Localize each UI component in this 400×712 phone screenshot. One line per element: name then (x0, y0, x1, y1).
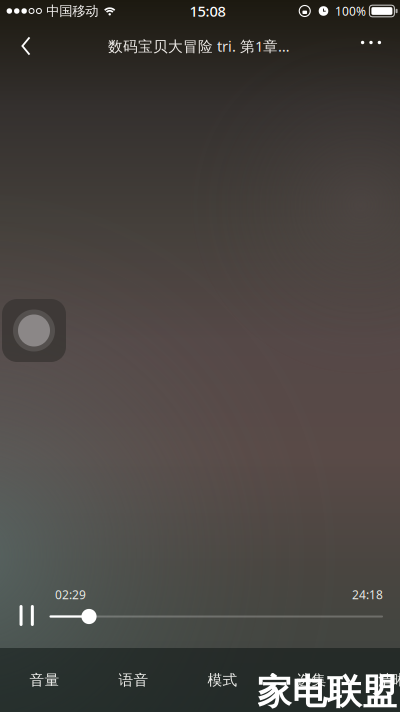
staticText: 中国移动 (46, 3, 98, 19)
button[interactable]: 音量 (0, 648, 89, 712)
button[interactable]: 模式 (178, 648, 267, 712)
staticText: 家电联盟 (257, 671, 397, 712)
staticText: 音量 (29, 671, 59, 689)
staticText: 02:29 (55, 586, 86, 602)
staticText: 15:08 (190, 1, 226, 21)
button[interactable]: 选集 (267, 648, 356, 712)
button[interactable]: Back (4, 24, 48, 68)
staticText: 语音 (118, 671, 148, 689)
staticText: 清晰度 (378, 671, 400, 689)
button[interactable]: Pause (7, 598, 47, 632)
staticText: 选集 (296, 671, 326, 689)
staticText: 24:18 (352, 586, 383, 602)
button[interactable]: 语音 (89, 648, 178, 712)
staticText: 模式 (207, 671, 237, 689)
staticText: 数码宝贝大冒险 tri. 第1章… (108, 36, 290, 56)
staticText: 100% (335, 3, 366, 19)
button[interactable]: Lock rotation (2, 299, 66, 362)
button[interactable]: More options (347, 20, 395, 64)
button[interactable]: 清晰度 (356, 648, 400, 712)
